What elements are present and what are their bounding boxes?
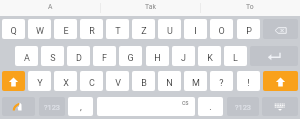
- staticText: Z: [141, 26, 147, 37]
- staticText: G: [127, 53, 134, 64]
- staticText: M: [192, 78, 200, 89]
- button[interactable]: ?123: [227, 97, 259, 116]
- button[interactable]: H: [146, 46, 169, 66]
- button[interactable]: X: [54, 71, 77, 91]
- button[interactable]: .: [198, 97, 223, 116]
- button[interactable]: Q: [2, 19, 25, 39]
- button[interactable]: N: [158, 71, 181, 91]
- button[interactable]: U: [158, 19, 181, 39]
- button[interactable]: M: [184, 71, 207, 91]
- button[interactable]: Tak: [100, 0, 200, 16]
- button[interactable]: Y: [28, 71, 51, 91]
- staticText: V: [115, 78, 121, 89]
- button[interactable]: Hide keyboard: [262, 97, 298, 116]
- staticText: Tak: [145, 3, 156, 11]
- button[interactable]: W: [28, 19, 51, 39]
- button[interactable]: !: [237, 71, 260, 91]
- staticText: U: [167, 26, 173, 37]
- staticText: R: [89, 26, 95, 37]
- staticText: L: [233, 53, 238, 64]
- button[interactable]: R: [80, 19, 103, 39]
- staticText: O: [218, 26, 225, 37]
- staticText: T: [115, 26, 121, 37]
- button[interactable]: Z: [132, 19, 155, 39]
- button[interactable]: T: [106, 19, 129, 39]
- button[interactable]: Enter: [250, 46, 298, 66]
- button[interactable]: P: [237, 19, 260, 39]
- button[interactable]: A: [15, 46, 38, 66]
- button[interactable]: L: [224, 46, 247, 66]
- staticText: To: [246, 3, 254, 11]
- button[interactable]: ?123: [39, 97, 65, 116]
- button[interactable]: G: [119, 46, 142, 66]
- button[interactable]: O: [210, 19, 233, 39]
- staticText: E: [63, 26, 69, 37]
- staticText: X: [63, 78, 69, 89]
- button[interactable]: K: [198, 46, 221, 66]
- button[interactable]: J: [172, 46, 195, 66]
- staticText: A: [24, 53, 30, 64]
- button[interactable]: Gesture typing: [2, 97, 35, 116]
- staticText: .: [209, 102, 212, 113]
- button[interactable]: To: [200, 0, 300, 16]
- button[interactable]: E: [54, 19, 77, 39]
- button[interactable]: ?: [210, 71, 233, 91]
- staticText: K: [207, 53, 213, 64]
- button[interactable]: S: [41, 46, 64, 66]
- staticText: Y: [37, 78, 43, 89]
- staticText: ?: [219, 78, 224, 89]
- staticText: ,: [80, 102, 82, 113]
- staticText: !: [247, 78, 250, 89]
- staticText: J: [181, 53, 186, 64]
- staticText: cs: [182, 99, 189, 107]
- button[interactable]: ,: [68, 97, 93, 116]
- button[interactable]: F: [93, 46, 116, 66]
- button[interactable]: C: [80, 71, 103, 91]
- staticText: D: [76, 53, 82, 64]
- button[interactable]: I: [184, 19, 207, 39]
- staticText: B: [141, 78, 147, 89]
- staticText: W: [36, 26, 44, 37]
- staticText: A: [48, 3, 53, 11]
- staticText: ?123: [235, 103, 251, 112]
- staticText: I: [194, 26, 197, 37]
- staticText: Q: [10, 26, 17, 37]
- button[interactable]: V: [106, 71, 129, 91]
- staticText: F: [102, 53, 107, 64]
- staticText: N: [166, 78, 173, 89]
- staticText: ?123: [44, 103, 60, 112]
- staticText: C: [89, 78, 95, 89]
- staticText: S: [50, 53, 56, 64]
- button[interactable]: D: [67, 46, 90, 66]
- button[interactable]: Shift: [2, 71, 25, 91]
- button[interactable]: Space: [97, 97, 195, 116]
- staticText: H: [154, 53, 161, 64]
- button[interactable]: Shift: [263, 71, 298, 91]
- button[interactable]: A: [0, 0, 100, 16]
- button[interactable]: B: [132, 71, 155, 91]
- staticText: P: [246, 26, 252, 37]
- button[interactable]: Backspace: [263, 19, 298, 39]
